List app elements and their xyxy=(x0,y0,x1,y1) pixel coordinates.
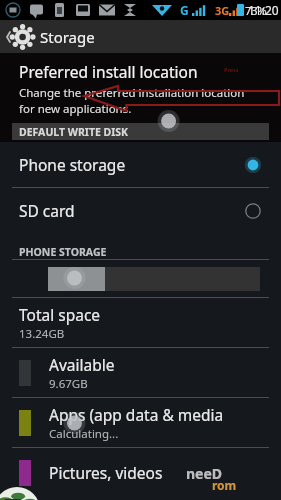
staticText: Apps (app data & media content) xyxy=(49,404,269,425)
staticText: 73% xyxy=(245,3,267,18)
button[interactable]: SD card xyxy=(0,188,281,233)
staticText: Storage xyxy=(40,27,95,47)
staticText: 13.24GB xyxy=(19,326,65,342)
other: Back to Settings xyxy=(4,22,34,52)
staticText: Preferred install location xyxy=(19,61,198,82)
staticText: SD card xyxy=(19,200,244,221)
staticText: 9.67GB xyxy=(49,376,88,392)
staticText: for new applications. xyxy=(19,101,132,117)
staticText: Press xyxy=(224,66,239,73)
button[interactable]: Available xyxy=(0,348,281,397)
staticText: PHONE STORAGE xyxy=(19,245,107,259)
button[interactable]: Back to Settings xyxy=(0,20,281,53)
staticText: Phone storage xyxy=(19,154,244,175)
staticText: G xyxy=(180,2,189,18)
staticText: 11:20 xyxy=(248,2,279,18)
staticText: DEFAULT WRITE DISK xyxy=(19,125,129,139)
button[interactable]: Apps (app data & media content) xyxy=(0,398,281,447)
button[interactable]: Phone storage xyxy=(0,142,281,187)
staticText: rom xyxy=(212,477,237,493)
staticText: Available xyxy=(49,354,115,375)
staticText: neeD xyxy=(186,464,223,483)
staticText: Pictures, videos xyxy=(49,462,163,483)
button[interactable]: Total space xyxy=(0,298,281,347)
staticText: Calculating... xyxy=(49,426,119,442)
button[interactable]: Pictures, videos xyxy=(0,448,281,497)
staticText: 3G xyxy=(215,3,230,18)
staticText: Change the preferred installation locati… xyxy=(19,85,245,101)
staticText: Total space xyxy=(19,304,101,325)
